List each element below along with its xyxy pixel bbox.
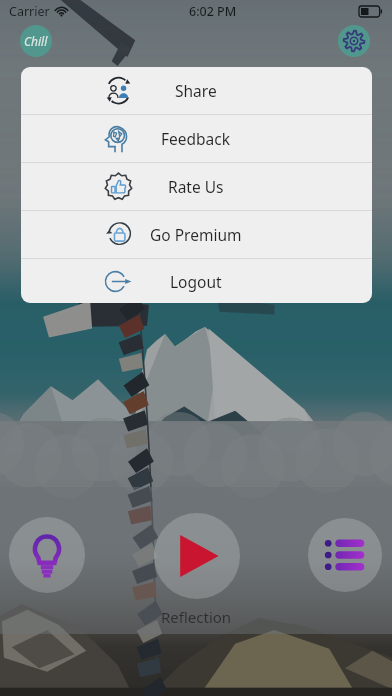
- button[interactable]: Play: [154, 513, 240, 599]
- button[interactable]: Settings: [338, 25, 370, 57]
- staticText: Logout: [170, 271, 222, 292]
- staticText: Rate Us: [168, 176, 224, 197]
- button[interactable]: Go Premium: [21, 211, 372, 258]
- button[interactable]: Rate Us: [21, 163, 372, 210]
- button[interactable]: Feedback: [21, 115, 372, 162]
- staticText: Chill: [24, 33, 48, 49]
- staticText: Go Premium: [150, 224, 242, 245]
- staticText: Carrier: [9, 3, 50, 20]
- button[interactable]: Logout: [21, 259, 372, 303]
- button[interactable]: List: [308, 518, 382, 592]
- button[interactable]: Idea: [9, 517, 85, 593]
- staticText: 6:02 PM: [189, 3, 237, 20]
- staticText: Feedback: [161, 128, 231, 149]
- staticText: Share: [175, 80, 217, 101]
- staticText: Reflection: [161, 607, 232, 627]
- button[interactable]: Share: [21, 67, 372, 114]
- button[interactable]: Chill: [20, 25, 52, 57]
